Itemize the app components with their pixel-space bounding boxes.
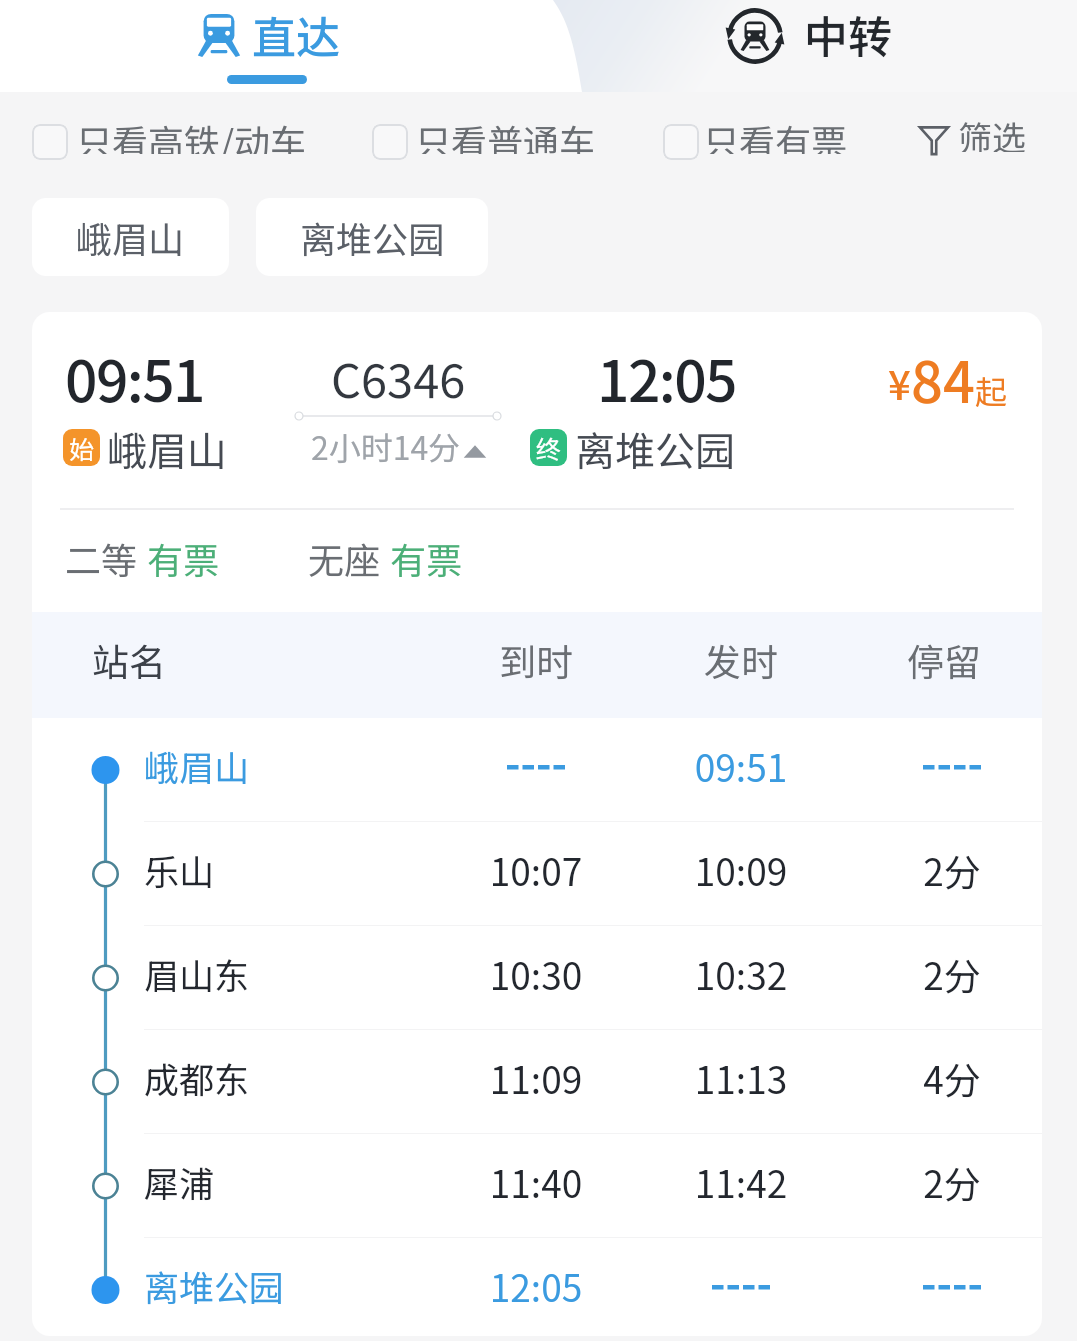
staticText: 11:42 <box>641 1155 841 1209</box>
button[interactable]: 只看高铁/动车 <box>32 122 307 162</box>
staticText: 终 <box>536 430 562 466</box>
staticText: 峨眉山 <box>144 740 250 791</box>
staticText: 直达 <box>252 3 340 67</box>
staticText: 11:09 <box>436 1051 636 1105</box>
button[interactable]: 09:51 <box>32 312 1042 612</box>
staticText: 2分 <box>852 947 1042 1001</box>
staticText: 10:07 <box>436 843 636 897</box>
staticText: 84 <box>911 338 975 419</box>
staticText: ¥ <box>888 354 911 412</box>
button[interactable]: 只看普通车 <box>372 122 596 162</box>
button[interactable]: 离堆公园 <box>32 1238 1042 1336</box>
staticText: 乐山 <box>144 844 215 895</box>
staticText: 始 <box>69 430 95 466</box>
staticText: 起 <box>975 367 1008 413</box>
staticText: 10:09 <box>641 843 841 897</box>
staticText: 09:51 <box>641 739 841 793</box>
staticText: 离堆公园 <box>575 420 735 478</box>
staticText: 二等 <box>65 532 138 584</box>
staticText: 只看有票 <box>703 114 848 154</box>
staticText: 4分 <box>852 1051 1042 1105</box>
staticText: C6346 <box>331 343 466 411</box>
staticText: 11:40 <box>436 1155 636 1209</box>
staticText: 只看高铁/动车 <box>76 114 307 154</box>
staticText: 峨眉山 <box>107 420 227 478</box>
button[interactable]: 眉山东 <box>32 926 1042 1030</box>
staticText: 成都东 <box>144 1052 250 1103</box>
staticText: 2分 <box>852 1155 1042 1209</box>
staticText: 站名 <box>92 633 166 687</box>
staticText: 2分 <box>852 843 1042 897</box>
staticText: 10:32 <box>641 947 841 1001</box>
other: 筛选 <box>919 125 949 155</box>
staticText: 中转 <box>804 2 892 66</box>
button[interactable]: 筛选 <box>919 120 1026 160</box>
staticText: 筛选 <box>958 112 1026 152</box>
button[interactable]: 直达 <box>0 0 540 92</box>
button[interactable]: 乐山 <box>32 822 1042 926</box>
staticText: 发时 <box>641 633 841 687</box>
staticText: 眉山东 <box>144 948 250 999</box>
staticText: 停留 <box>844 633 1042 687</box>
button[interactable]: 犀浦 <box>32 1134 1042 1238</box>
button[interactable]: 成都东 <box>32 1030 1042 1134</box>
button[interactable]: 只看有票 <box>663 122 848 162</box>
staticText: 离堆公园 <box>300 211 445 263</box>
staticText: 有票 <box>147 532 220 584</box>
staticText: 2小时14分 <box>311 423 461 469</box>
staticText: 只看普通车 <box>415 114 596 154</box>
staticText: 11:13 <box>641 1051 841 1105</box>
staticText: 09:51 <box>65 336 204 419</box>
button[interactable]: 中转 <box>540 0 1077 92</box>
staticText: 12:05 <box>597 336 736 419</box>
button[interactable]: 峨眉山 <box>32 198 229 276</box>
staticText: 10:30 <box>436 947 636 1001</box>
staticText: 无座 <box>308 532 381 584</box>
button[interactable]: 离堆公园 <box>256 198 488 276</box>
staticText: 峨眉山 <box>76 211 185 263</box>
staticText: 犀浦 <box>144 1156 215 1207</box>
staticText: 有票 <box>390 532 463 584</box>
staticText: 到时 <box>436 633 636 687</box>
button[interactable]: 峨眉山 <box>32 718 1042 822</box>
staticText: 12:05 <box>436 1259 636 1313</box>
staticText: 离堆公园 <box>144 1260 285 1311</box>
